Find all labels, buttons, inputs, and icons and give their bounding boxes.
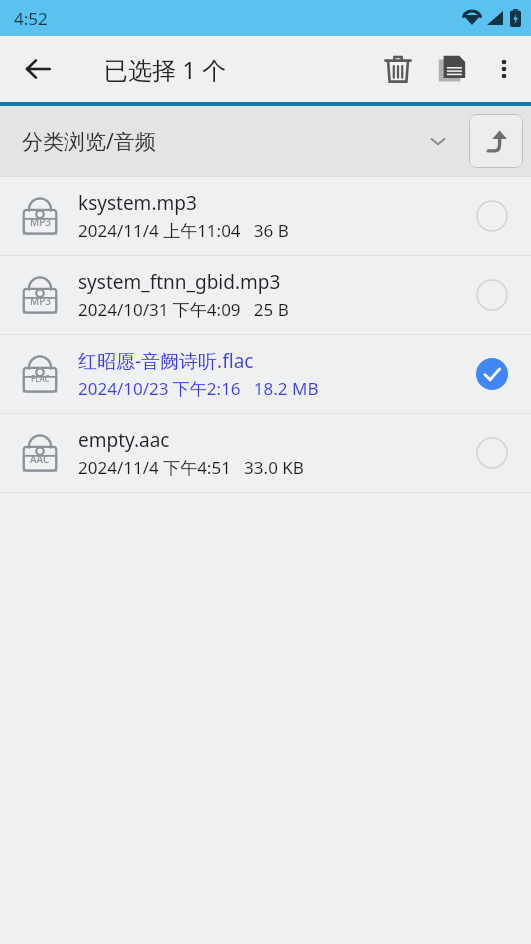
button[interactable]: Selected — [453, 335, 531, 413]
button[interactable]: AAC — [0, 414, 531, 492]
staticText: FLAC — [31, 373, 50, 384]
button[interactable]: Back — [10, 41, 66, 97]
button[interactable]: More options — [479, 44, 529, 94]
staticText: 分类浏览/音频 — [22, 127, 428, 156]
button[interactable]: Up one level — [469, 114, 523, 168]
staticText: 4:52 — [14, 7, 48, 30]
button[interactable]: Select — [453, 256, 531, 334]
button[interactable]: Copy — [425, 42, 479, 96]
button[interactable]: Delete — [371, 42, 425, 96]
button[interactable]: 分类浏览/音频 — [0, 106, 460, 176]
staticText: MP3 — [30, 215, 51, 229]
staticText: 红昭愿-音阙诗听.flac — [78, 348, 254, 374]
staticText: 已选择 1 个 — [104, 53, 227, 86]
staticText: empty.aac — [78, 427, 170, 453]
staticText: ksystem.mp3 — [78, 190, 197, 216]
staticText: MP3 — [30, 294, 51, 308]
button[interactable]: MP3 — [0, 256, 531, 334]
button[interactable]: FLAC — [0, 335, 531, 413]
button[interactable]: Select — [453, 177, 531, 255]
staticText: 2024/11/4 上午11:04 36 B — [78, 219, 289, 242]
staticText: 2024/10/31 下午4:09 25 B — [78, 298, 289, 321]
staticText: 2024/11/4 下午4:51 33.0 KB — [78, 456, 304, 479]
staticText: AAC — [30, 452, 50, 466]
button[interactable]: MP3 — [0, 177, 531, 255]
staticText: system_ftnn_gbid.mp3 — [78, 269, 281, 295]
staticText: 2024/10/23 下午2:16 18.2 MB — [78, 377, 319, 400]
button[interactable]: Select — [453, 414, 531, 492]
